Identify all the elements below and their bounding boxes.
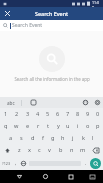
button[interactable]: e bbox=[22, 120, 33, 132]
button[interactable]: Home bbox=[38, 170, 52, 183]
button[interactable]: 9 bbox=[83, 108, 93, 120]
button[interactable]: Search Event bbox=[0, 20, 103, 31]
staticText: u bbox=[66, 122, 70, 130]
staticText: x bbox=[28, 146, 31, 154]
staticText: Search all the information in the app bbox=[14, 76, 90, 82]
staticText: k bbox=[82, 134, 85, 142]
staticText: e bbox=[26, 122, 30, 130]
button[interactable]: Backspace bbox=[88, 144, 103, 156]
button[interactable]: 1 bbox=[0, 108, 11, 120]
staticText: Search Event bbox=[35, 10, 69, 17]
staticText: abc bbox=[7, 100, 15, 106]
staticText: s bbox=[20, 134, 23, 142]
button[interactable]: a bbox=[5, 132, 16, 144]
staticText: 7 bbox=[66, 110, 70, 118]
staticText: 6 bbox=[56, 110, 60, 118]
button[interactable]: b bbox=[55, 144, 66, 156]
button[interactable]: Hide keyboard bbox=[86, 171, 98, 183]
button[interactable]: w bbox=[11, 120, 22, 132]
button[interactable]: 2 bbox=[11, 108, 22, 120]
button[interactable]: Search bbox=[90, 158, 101, 169]
button[interactable]: 6 bbox=[53, 108, 63, 120]
button[interactable]: u bbox=[63, 120, 73, 132]
button[interactable]: l bbox=[88, 132, 98, 144]
button[interactable]: d bbox=[27, 132, 38, 144]
button[interactable]: k bbox=[78, 132, 88, 144]
button[interactable]: c bbox=[34, 144, 44, 156]
button[interactable]: Close bbox=[2, 8, 13, 19]
button[interactable]: m bbox=[77, 144, 88, 156]
staticText: h bbox=[61, 134, 65, 142]
button[interactable]: 8 bbox=[73, 108, 83, 120]
button[interactable]: 3 bbox=[22, 108, 33, 120]
button[interactable]: v bbox=[44, 144, 55, 156]
staticText: o bbox=[86, 122, 90, 130]
button[interactable]: f bbox=[38, 132, 48, 144]
button[interactable]: r bbox=[33, 120, 43, 132]
staticText: j bbox=[72, 134, 74, 142]
staticText: n bbox=[70, 146, 74, 154]
button[interactable]: Shift bbox=[0, 144, 14, 156]
button[interactable]: 0 bbox=[93, 108, 103, 120]
button[interactable]: p bbox=[93, 120, 103, 132]
button[interactable]: y bbox=[53, 120, 63, 132]
staticText: ?123 bbox=[2, 161, 11, 166]
button[interactable]: j bbox=[68, 132, 78, 144]
button[interactable]: Settings bbox=[92, 97, 103, 108]
staticText: . bbox=[85, 160, 87, 167]
staticText: t bbox=[47, 122, 50, 130]
staticText: d bbox=[31, 134, 35, 142]
button[interactable]: t bbox=[43, 120, 53, 132]
staticText: 11:08 bbox=[92, 0, 101, 7]
button[interactable]: g bbox=[48, 132, 58, 144]
button[interactable]: n bbox=[66, 144, 77, 156]
staticText: v bbox=[48, 146, 51, 154]
staticText: 2 bbox=[15, 110, 19, 118]
staticText: l bbox=[92, 134, 94, 142]
staticText: y bbox=[57, 122, 60, 130]
button[interactable]: Back bbox=[12, 170, 26, 183]
staticText: p bbox=[96, 122, 100, 130]
staticText: c bbox=[38, 146, 41, 154]
button[interactable]: Emoji bbox=[79, 97, 92, 108]
staticText: b bbox=[59, 146, 63, 154]
staticText: a bbox=[9, 134, 13, 142]
button[interactable]: z bbox=[14, 144, 24, 156]
staticText: z bbox=[18, 146, 21, 154]
staticText: 8 bbox=[76, 110, 80, 118]
button[interactable]: Recents bbox=[64, 170, 78, 183]
button[interactable]: , bbox=[12, 156, 19, 170]
button[interactable]: o bbox=[83, 120, 93, 132]
button[interactable]: h bbox=[58, 132, 68, 144]
staticText: q bbox=[4, 122, 8, 130]
staticText: , bbox=[15, 160, 17, 167]
staticText: 9 bbox=[86, 110, 90, 118]
button[interactable]: s bbox=[16, 132, 27, 144]
button[interactable]: Stickers bbox=[22, 97, 44, 108]
staticText: 4 bbox=[36, 110, 40, 118]
staticText: i bbox=[77, 122, 79, 130]
staticText: w bbox=[14, 122, 19, 130]
button[interactable]: Change language bbox=[19, 156, 28, 170]
button[interactable]: . bbox=[82, 156, 90, 170]
staticText: 0 bbox=[96, 110, 100, 118]
button[interactable]: 7 bbox=[63, 108, 73, 120]
button[interactable]: q bbox=[0, 120, 11, 132]
button[interactable]: abc bbox=[0, 97, 21, 108]
button[interactable]: ?123 bbox=[0, 156, 12, 170]
staticText: f bbox=[42, 134, 44, 142]
button[interactable]: 5 bbox=[43, 108, 53, 120]
staticText: Search Event bbox=[12, 22, 43, 29]
button[interactable]: 4 bbox=[33, 108, 43, 120]
staticText: m bbox=[80, 146, 86, 154]
staticText: 5 bbox=[46, 110, 50, 118]
staticText: g bbox=[51, 134, 55, 142]
staticText: r bbox=[37, 122, 40, 130]
button[interactable]: i bbox=[73, 120, 83, 132]
staticText: 1 bbox=[4, 110, 8, 118]
button[interactable]: x bbox=[24, 144, 34, 156]
staticText: 3 bbox=[26, 110, 30, 118]
